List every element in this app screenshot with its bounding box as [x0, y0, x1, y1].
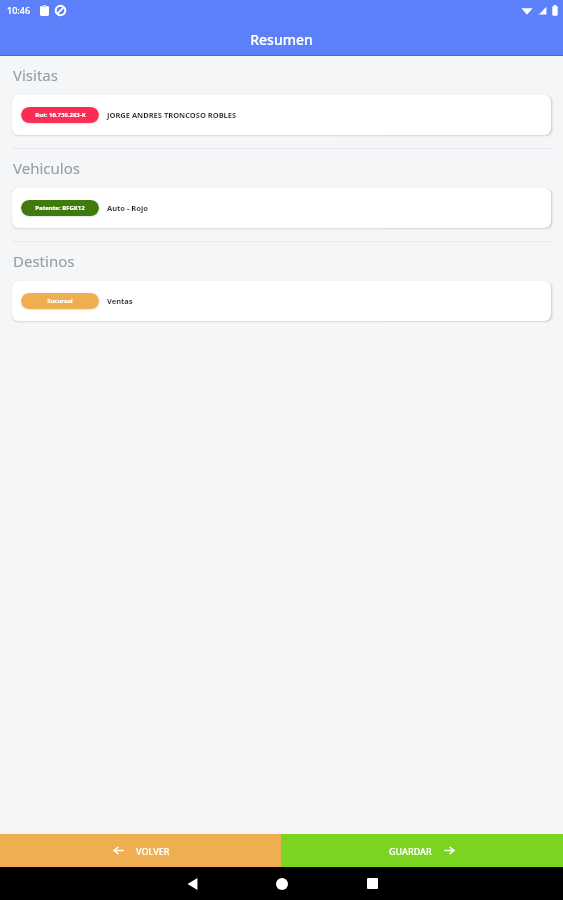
staticText: Resumen	[250, 30, 313, 49]
staticText: Visitas	[13, 65, 58, 85]
button[interactable]: Recents	[349, 867, 395, 900]
staticText: Auto - Rojo	[107, 203, 148, 213]
staticText: 10:46	[7, 4, 31, 16]
staticText: Patente: BFGK12	[35, 204, 85, 212]
staticText: Vehiculos	[13, 158, 80, 178]
staticText: Rut: 16.730.283-K	[35, 111, 86, 119]
staticText: Sucursal	[47, 297, 73, 305]
staticText: Ventas	[107, 296, 133, 306]
staticText: Destinos	[13, 251, 75, 271]
button[interactable]: GUARDAR	[281, 834, 563, 867]
staticText: VOLVER	[136, 845, 170, 857]
button[interactable]: Home	[259, 867, 305, 900]
button[interactable]: Sucursal	[12, 281, 551, 321]
button[interactable]: Back	[169, 867, 215, 900]
staticText: GUARDAR	[389, 845, 432, 857]
button[interactable]: VOLVER	[0, 834, 281, 867]
button[interactable]: Rut: 16.730.283-K	[12, 95, 551, 135]
staticText: JORGE ANDRES TRONCOSO ROBLES	[107, 110, 237, 120]
button[interactable]: Patente: BFGK12	[12, 188, 551, 228]
